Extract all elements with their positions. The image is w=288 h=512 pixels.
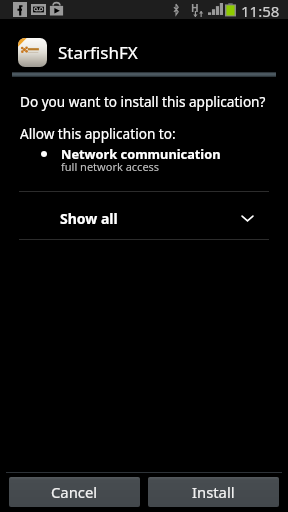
staticText: H+ [191, 1, 203, 16]
staticText: Network communication [61, 145, 221, 162]
staticText: Install [192, 482, 235, 502]
staticText: full network access [61, 159, 160, 174]
button[interactable]: Install [148, 477, 279, 507]
staticText: Cancel [51, 482, 98, 502]
staticText: Allow this application to: [20, 124, 176, 143]
staticText: 11:58 [241, 1, 280, 20]
staticText: Do you want to install this application? [20, 92, 266, 111]
staticText: StarfishFX [58, 41, 138, 64]
staticText: Show all [60, 209, 118, 228]
button[interactable]: Show all permissions [0, 191, 288, 240]
button[interactable]: Cancel [9, 477, 140, 507]
